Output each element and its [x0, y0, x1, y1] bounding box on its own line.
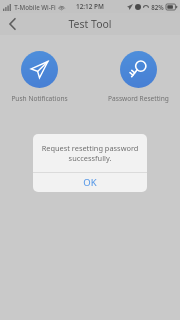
button[interactable]: Back — [0, 13, 24, 35]
staticText: OK — [83, 176, 97, 189]
staticText: 12:12 PM — [76, 2, 104, 11]
staticText: Request resetting password successfully. — [41, 143, 139, 163]
button[interactable]: Password Resetting — [106, 51, 171, 103]
staticText: T-Mobile Wi-Fi — [14, 3, 56, 11]
button[interactable]: Push Notifications — [9, 51, 70, 103]
staticText: Test Tool — [68, 17, 112, 31]
staticText: Push Notifications — [11, 94, 68, 103]
staticText: Password Resetting — [108, 94, 169, 103]
button[interactable]: OK — [33, 173, 147, 192]
staticText: 82% — [151, 3, 164, 11]
